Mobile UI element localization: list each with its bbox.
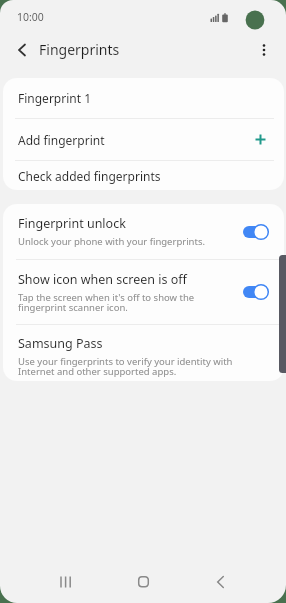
button[interactable] [115,561,171,603]
button[interactable]: Fingerprint unlock [3,204,284,259]
staticText: Add fingerprint [18,132,105,148]
staticText: Tap the screen when it's off to show the… [18,291,195,314]
button[interactable]: Fingerprint 1 [3,78,284,118]
staticText: Fingerprint 1 [18,90,92,106]
button[interactable] [38,561,94,603]
staticText: Check added fingerprints [18,168,161,184]
button[interactable]: Show icon when screen is off [3,260,284,324]
staticText: Unlock your phone with your fingerprints… [18,235,206,248]
staticText: Fingerprint unlock [18,215,126,232]
staticText: Show icon when screen is off [18,271,187,288]
button[interactable] [10,39,34,61]
staticText: Fingerprints [39,40,120,59]
staticText: Samsung Pass [18,335,103,352]
staticText: 10:00 [17,10,44,24]
button[interactable] [192,561,248,603]
button[interactable]: Samsung Pass [3,325,284,381]
button[interactable]: Add fingerprint [3,119,284,160]
staticText: Use your fingerprints to verify your ide… [18,355,233,378]
button[interactable]: Check added fingerprints [3,161,284,190]
button[interactable] [254,39,274,61]
